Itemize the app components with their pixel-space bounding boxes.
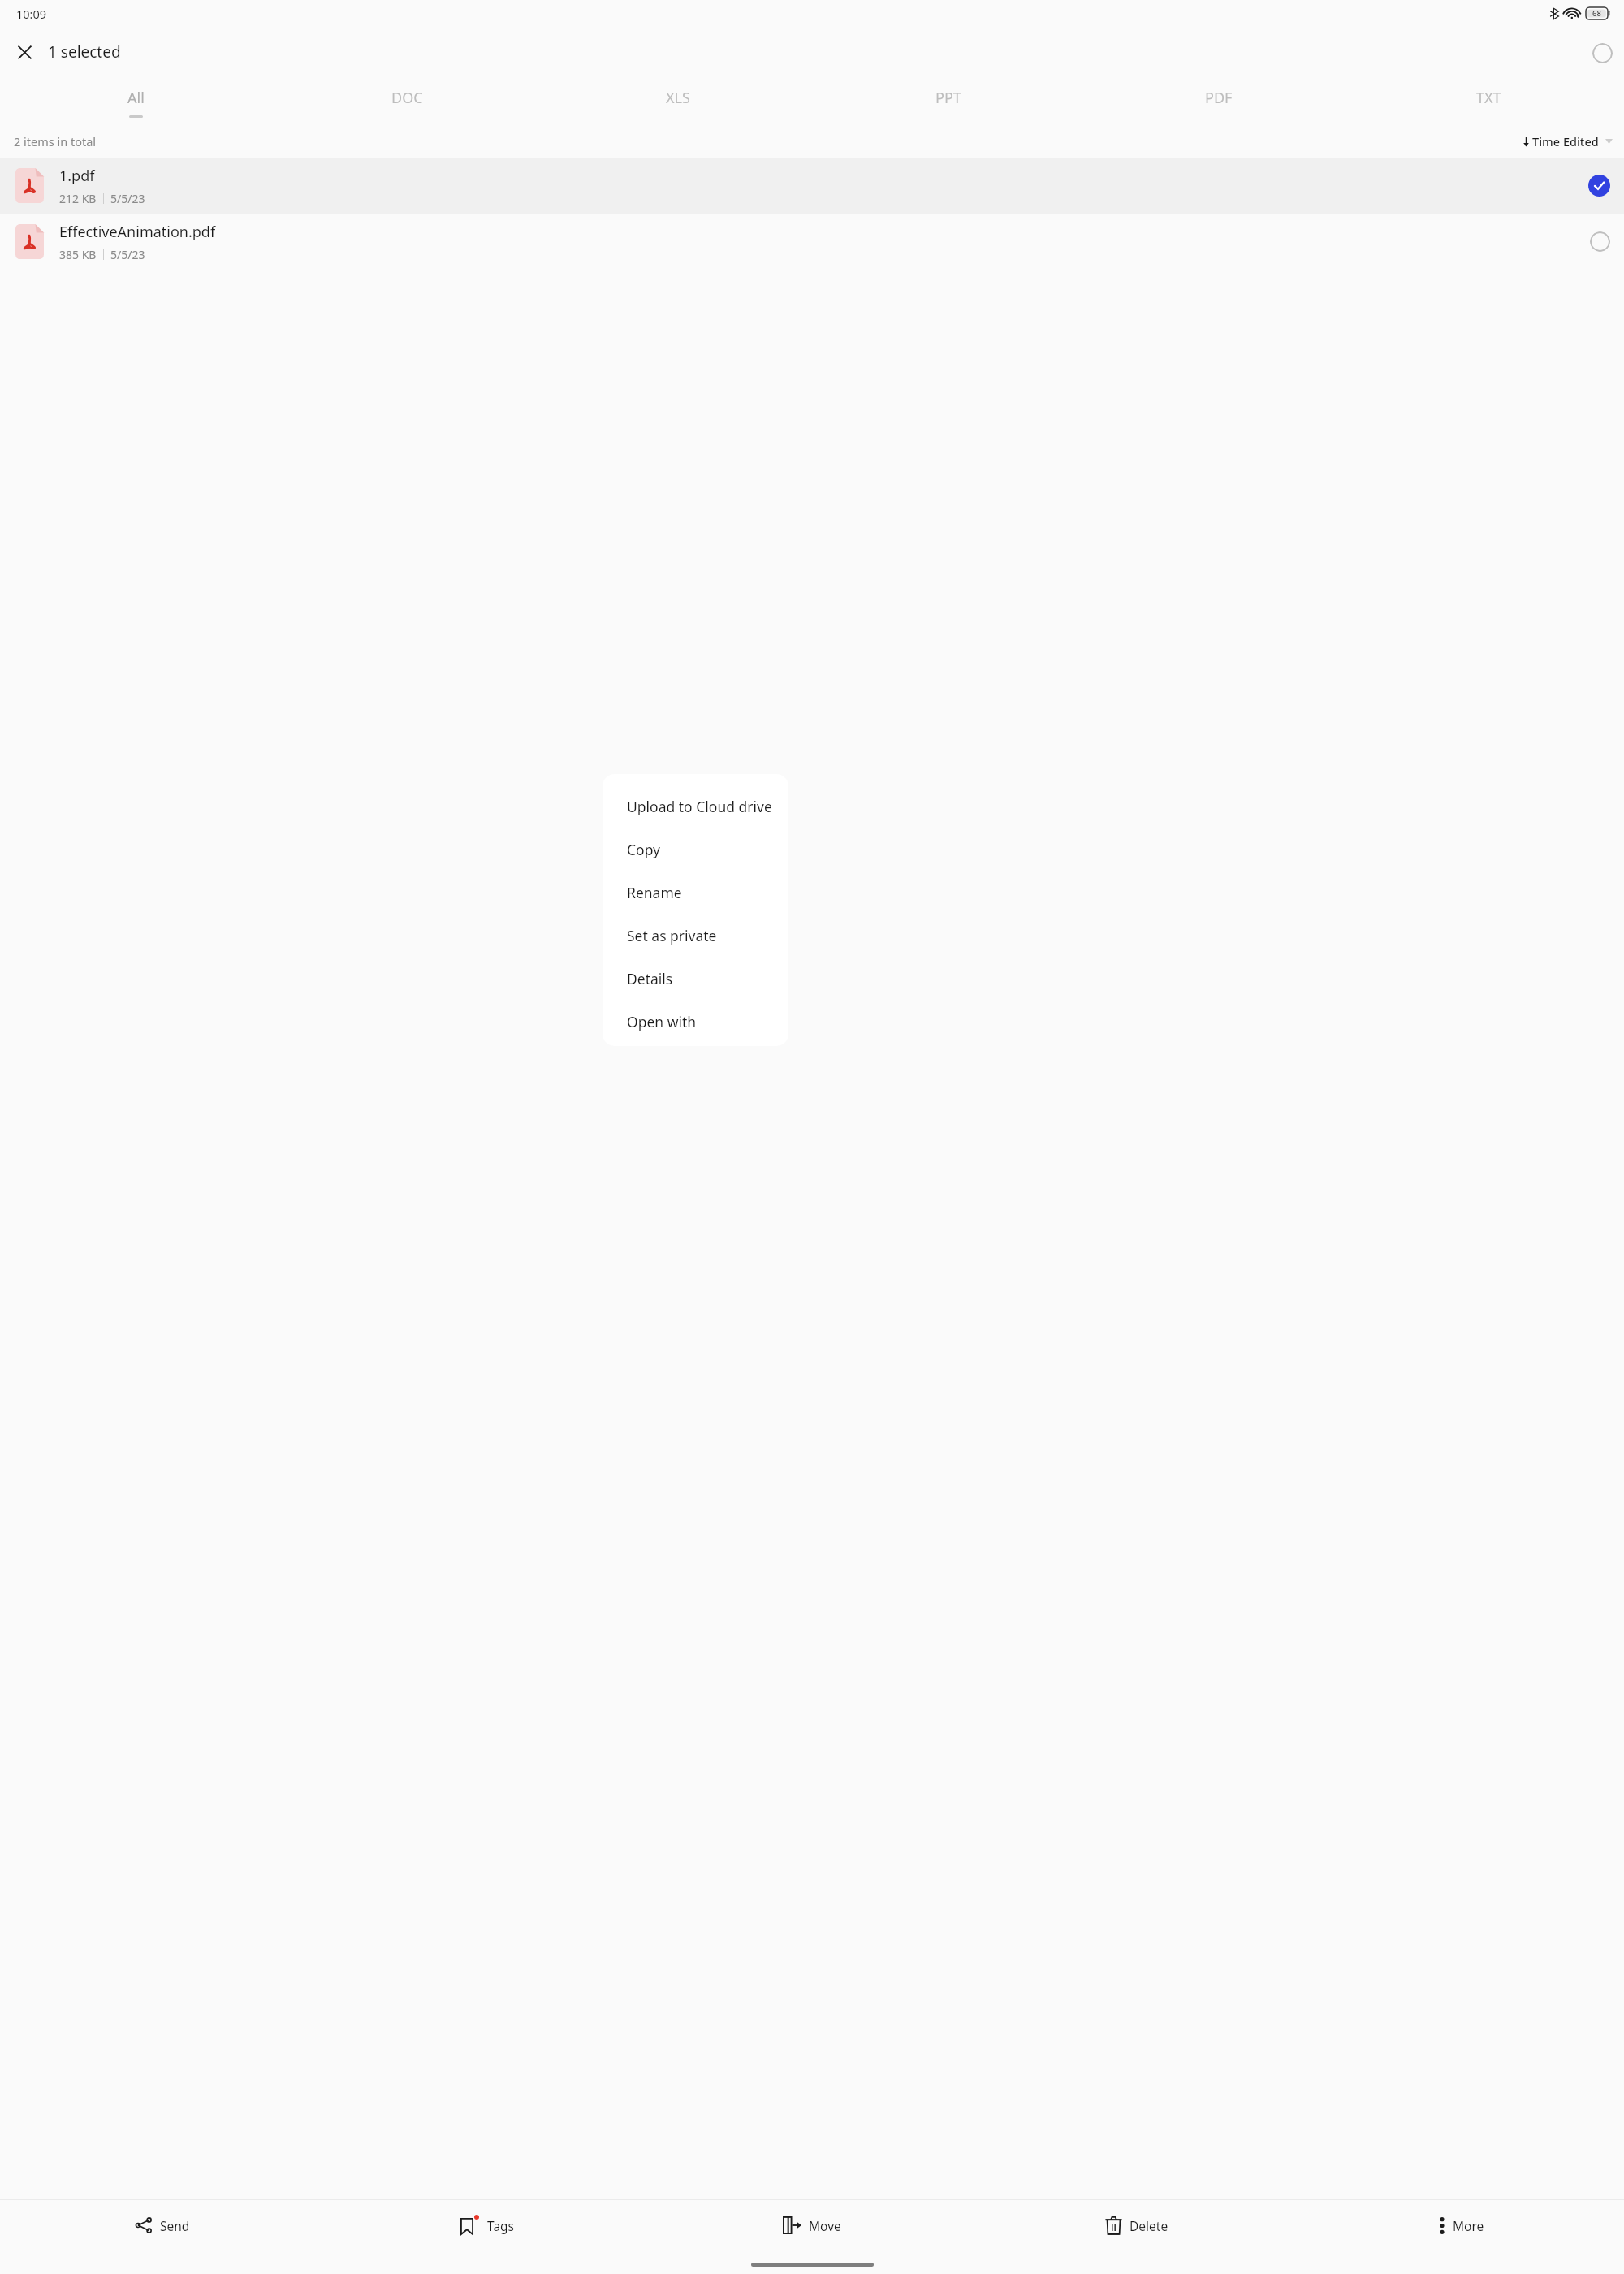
- button[interactable]: All: [0, 77, 271, 124]
- button[interactable]: Select all: [1581, 32, 1624, 75]
- button[interactable]: PPT: [813, 77, 1083, 124]
- staticText: 385 KB: [59, 247, 97, 262]
- staticText: Send: [160, 2217, 190, 2234]
- button[interactable]: Upload to Cloud drive: [603, 785, 788, 828]
- button[interactable]: PDF: [1083, 77, 1354, 124]
- button[interactable]: Open with: [603, 1000, 788, 1043]
- staticText: Move: [809, 2217, 841, 2234]
- staticText: Upload to Cloud drive: [627, 797, 772, 816]
- other: Close selection: [11, 39, 37, 65]
- button[interactable]: Close selection: [0, 32, 129, 71]
- button[interactable]: TXT: [1354, 77, 1624, 124]
- button[interactable]: Set as private: [603, 914, 788, 957]
- staticText: DOC: [391, 88, 423, 108]
- staticText: Copy: [627, 840, 660, 859]
- staticText: Time Edited: [1532, 133, 1599, 149]
- staticText: Details: [627, 969, 673, 988]
- staticText: Set as private: [627, 926, 717, 945]
- button[interactable]: More: [1299, 2200, 1624, 2250]
- staticText: More: [1453, 2217, 1484, 2234]
- button[interactable]: EffectiveAnimation.pdf: [0, 214, 1624, 270]
- staticText: All: [127, 88, 145, 108]
- staticText: 5/5/23: [110, 247, 145, 262]
- staticText: Rename: [627, 883, 682, 902]
- staticText: EffectiveAnimation.pdf: [59, 222, 216, 242]
- staticText: PDF: [1205, 88, 1233, 108]
- button[interactable]: Selected: [1577, 163, 1622, 208]
- staticText: 68: [1586, 8, 1608, 19]
- button[interactable]: Tags: [325, 2200, 650, 2250]
- button[interactable]: DOC: [271, 77, 542, 124]
- staticText: Open with: [627, 1012, 697, 1031]
- button[interactable]: Delete: [974, 2200, 1299, 2250]
- staticText: 2 items in total: [14, 133, 97, 149]
- button[interactable]: Send: [0, 2200, 325, 2250]
- staticText: 1.pdf: [59, 166, 95, 186]
- staticText: Delete: [1129, 2217, 1168, 2234]
- button[interactable]: Move: [650, 2200, 974, 2250]
- staticText: TXT: [1476, 88, 1501, 108]
- staticText: 212 KB: [59, 191, 97, 206]
- button[interactable]: Details: [603, 957, 788, 1000]
- staticText: XLS: [666, 88, 690, 108]
- staticText: Tags: [487, 2217, 515, 2234]
- staticText: 10:09: [16, 6, 47, 22]
- button[interactable]: Rename: [603, 871, 788, 914]
- staticText: 5/5/23: [110, 191, 145, 206]
- button[interactable]: Time Edited: [1514, 128, 1624, 154]
- button[interactable]: XLS: [542, 77, 813, 124]
- staticText: 1 selected: [48, 41, 121, 63]
- button[interactable]: Copy: [603, 828, 788, 871]
- button[interactable]: 1.pdf: [0, 158, 1624, 214]
- button[interactable]: Select: [1579, 220, 1622, 263]
- staticText: PPT: [935, 88, 961, 108]
